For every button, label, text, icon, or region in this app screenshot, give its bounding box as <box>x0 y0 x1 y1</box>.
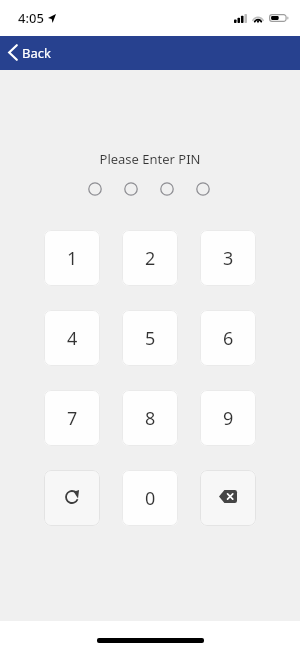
staticText: 5 <box>145 326 156 351</box>
staticText: 7 <box>67 406 78 431</box>
staticText: 9 <box>223 406 234 431</box>
button[interactable]: 7 <box>44 390 100 446</box>
staticText: Please Enter PIN <box>0 150 300 168</box>
button[interactable]: 3 <box>200 230 256 286</box>
button[interactable]: 8 <box>122 390 178 446</box>
button[interactable]: Delete <box>200 470 256 526</box>
staticText: 4:05 <box>18 9 44 27</box>
button[interactable]: 2 <box>122 230 178 286</box>
staticText: 8 <box>145 406 156 431</box>
button[interactable]: 6 <box>200 310 256 366</box>
button[interactable]: Back <box>0 39 63 67</box>
staticText: 6 <box>223 326 234 351</box>
button[interactable]: 9 <box>200 390 256 446</box>
staticText: Back <box>22 44 51 62</box>
staticText: 2 <box>145 246 156 271</box>
button[interactable]: 1 <box>44 230 100 286</box>
button[interactable]: Reset <box>44 470 100 526</box>
staticText: 3 <box>223 246 234 271</box>
button[interactable]: 0 <box>122 470 178 526</box>
button[interactable]: 5 <box>122 310 178 366</box>
button[interactable]: 4 <box>44 310 100 366</box>
staticText: 1 <box>67 246 78 271</box>
staticText: 0 <box>145 486 156 511</box>
staticText: 4 <box>67 326 78 351</box>
